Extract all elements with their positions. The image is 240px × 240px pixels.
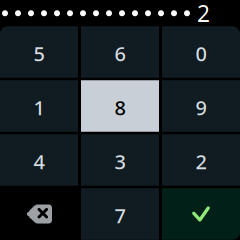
staticText: 2 [195,148,206,175]
staticText: 6 [114,40,125,67]
button[interactable]: 1 [0,80,78,132]
button[interactable]: 0 [162,26,240,78]
button[interactable]: 2 [162,134,240,186]
button[interactable]: Confirm [162,188,240,240]
staticText: 3 [114,148,125,175]
staticText: 4 [33,148,44,175]
staticText: 0 [195,40,206,67]
staticText: 2 [197,0,210,28]
button[interactable]: 3 [81,134,159,186]
staticText: 9 [195,94,206,121]
button[interactable]: 5 [0,26,78,78]
staticText: 1 [33,94,44,121]
staticText: 8 [114,94,125,121]
staticText: 5 [33,40,44,67]
button[interactable]: 7 [81,188,159,240]
button[interactable]: 4 [0,134,78,186]
button[interactable]: 9 [162,80,240,132]
button[interactable]: Delete [0,188,78,240]
button[interactable]: 8 [81,80,159,132]
button[interactable]: 6 [81,26,159,78]
staticText: 7 [114,202,125,229]
